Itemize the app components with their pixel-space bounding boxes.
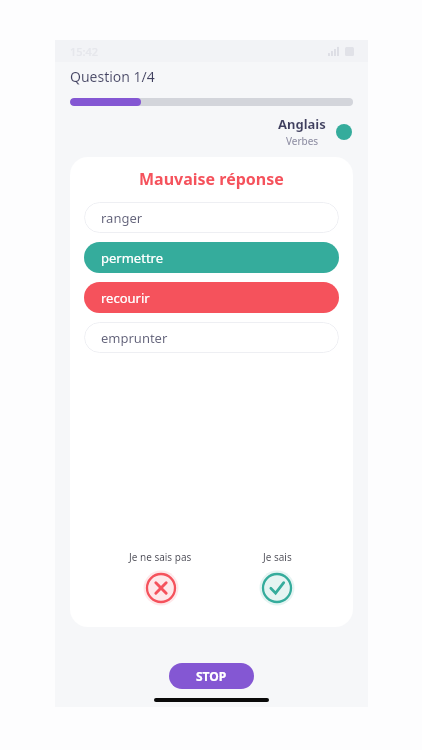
- staticText: permettre: [101, 249, 164, 267]
- button[interactable]: ranger: [84, 202, 339, 233]
- staticText: Mauvaise réponse: [139, 168, 284, 190]
- button[interactable]: STOP: [169, 663, 254, 689]
- staticText: emprunter: [101, 329, 168, 347]
- staticText: 15:42: [70, 44, 99, 59]
- button[interactable]: Je ne sais pas: [119, 548, 202, 607]
- staticText: STOP: [196, 668, 227, 684]
- staticText: ranger: [101, 209, 143, 227]
- staticText: Je ne sais pas: [129, 550, 192, 564]
- staticText: recourir: [101, 289, 150, 307]
- staticText: Anglais: [278, 115, 326, 133]
- button[interactable]: permettre: [84, 242, 339, 273]
- staticText: Question 1/4: [70, 67, 155, 86]
- staticText: Je sais: [263, 550, 292, 564]
- button[interactable]: Je sais: [250, 548, 304, 607]
- staticText: Verbes: [286, 134, 319, 148]
- button[interactable]: emprunter: [84, 322, 339, 353]
- button[interactable]: recourir: [84, 282, 339, 313]
